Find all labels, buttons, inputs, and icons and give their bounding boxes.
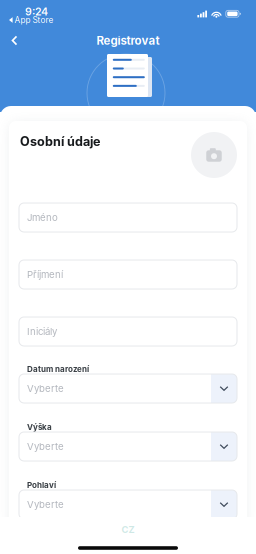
- staticText: Příjmení: [27, 269, 63, 280]
- button[interactable]: Vyberte: [19, 374, 237, 403]
- staticText: 9:24: [25, 5, 48, 18]
- button[interactable]: Příjmení: [19, 260, 237, 289]
- staticText: Pohlaví: [27, 480, 56, 490]
- staticText: Vyberte: [27, 383, 64, 394]
- button[interactable]: Vyberte: [19, 432, 237, 461]
- staticText: Registrovat: [96, 34, 159, 47]
- staticText: Datum narození: [27, 364, 89, 374]
- staticText: App Store: [14, 15, 53, 25]
- button[interactable]: Vyberte: [19, 490, 237, 519]
- staticText: Osobní údaje: [20, 134, 100, 149]
- button[interactable]: Jméno: [19, 203, 237, 232]
- staticText: Vyberte: [27, 441, 64, 452]
- staticText: Iniciály: [27, 326, 57, 337]
- button[interactable]: Back: [3, 29, 26, 52]
- button[interactable]: Iniciály: [19, 317, 237, 346]
- button[interactable]: Add photo: [191, 125, 237, 178]
- staticText: Vyberte: [27, 499, 64, 510]
- staticText: Jméno: [27, 212, 58, 223]
- staticText: Výška: [27, 422, 52, 432]
- staticText: CZ: [121, 524, 134, 535]
